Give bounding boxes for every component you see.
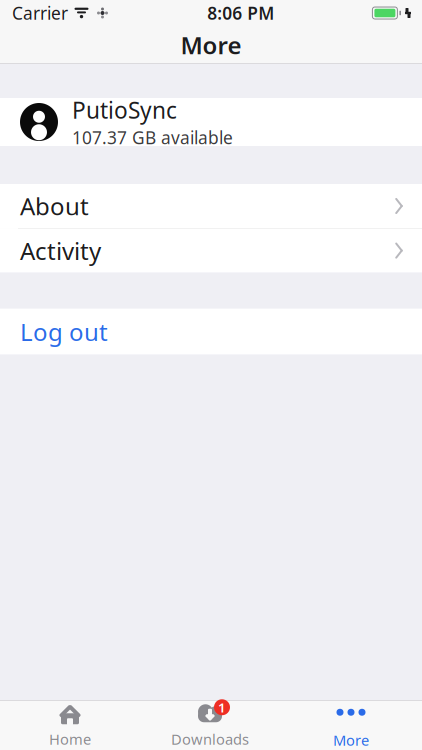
staticText: Log out [20,316,108,348]
staticText: More [180,29,241,61]
staticText: Downloads [171,729,249,749]
staticText: More [333,730,369,750]
staticText: 1 [218,698,226,716]
button[interactable]: About [0,184,422,228]
button[interactable]: Activity [0,229,422,273]
button[interactable]: 1 [140,700,280,750]
staticText: Home [49,729,91,749]
button[interactable]: More [280,700,422,750]
staticText: Carrier [12,1,68,24]
button[interactable]: Home [0,700,140,750]
staticText: About [20,190,89,222]
button[interactable]: Log out [0,309,422,355]
button[interactable]: PutioSync [0,98,422,146]
staticText: PutioSync [72,95,177,125]
staticText: 107.37 GB available [72,126,233,149]
staticText: Activity [20,235,101,267]
staticText: 8:06 PM [207,1,274,24]
